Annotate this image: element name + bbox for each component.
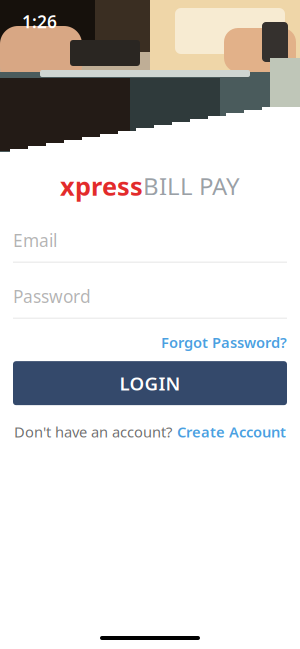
button[interactable]: Create Account xyxy=(177,422,286,442)
staticText: BILL PAY xyxy=(143,170,240,202)
staticText: Forgot Password? xyxy=(161,333,287,352)
staticText: xpress xyxy=(60,169,143,203)
staticText: LOGIN xyxy=(119,371,180,396)
button[interactable]: Forgot Password? xyxy=(161,333,287,352)
button[interactable]: LOGIN xyxy=(13,361,287,405)
staticText: Password xyxy=(13,285,91,308)
staticText: Don't have an account? xyxy=(14,422,172,442)
staticText: Create Account xyxy=(177,422,286,442)
staticText: 1:26 xyxy=(22,10,57,33)
staticText: Email xyxy=(13,229,57,252)
